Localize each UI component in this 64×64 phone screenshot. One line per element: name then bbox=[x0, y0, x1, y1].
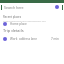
button[interactable]: Menu bbox=[0, 4, 64, 10]
staticText: Work address lane bbox=[10, 37, 37, 41]
staticText: Saved addresses and destinations you bbox=[3, 19, 46, 22]
staticText: 7 min bbox=[51, 37, 59, 41]
button[interactable]: Home place bbox=[0, 21, 64, 26]
other: Profile bbox=[55, 5, 59, 9]
button[interactable]: Work address lane bbox=[0, 36, 64, 41]
staticText: Trip details bbox=[3, 28, 24, 33]
staticText: Home place bbox=[10, 22, 27, 26]
staticText: Recent places bbox=[3, 15, 21, 19]
staticText: Search here bbox=[4, 5, 24, 10]
